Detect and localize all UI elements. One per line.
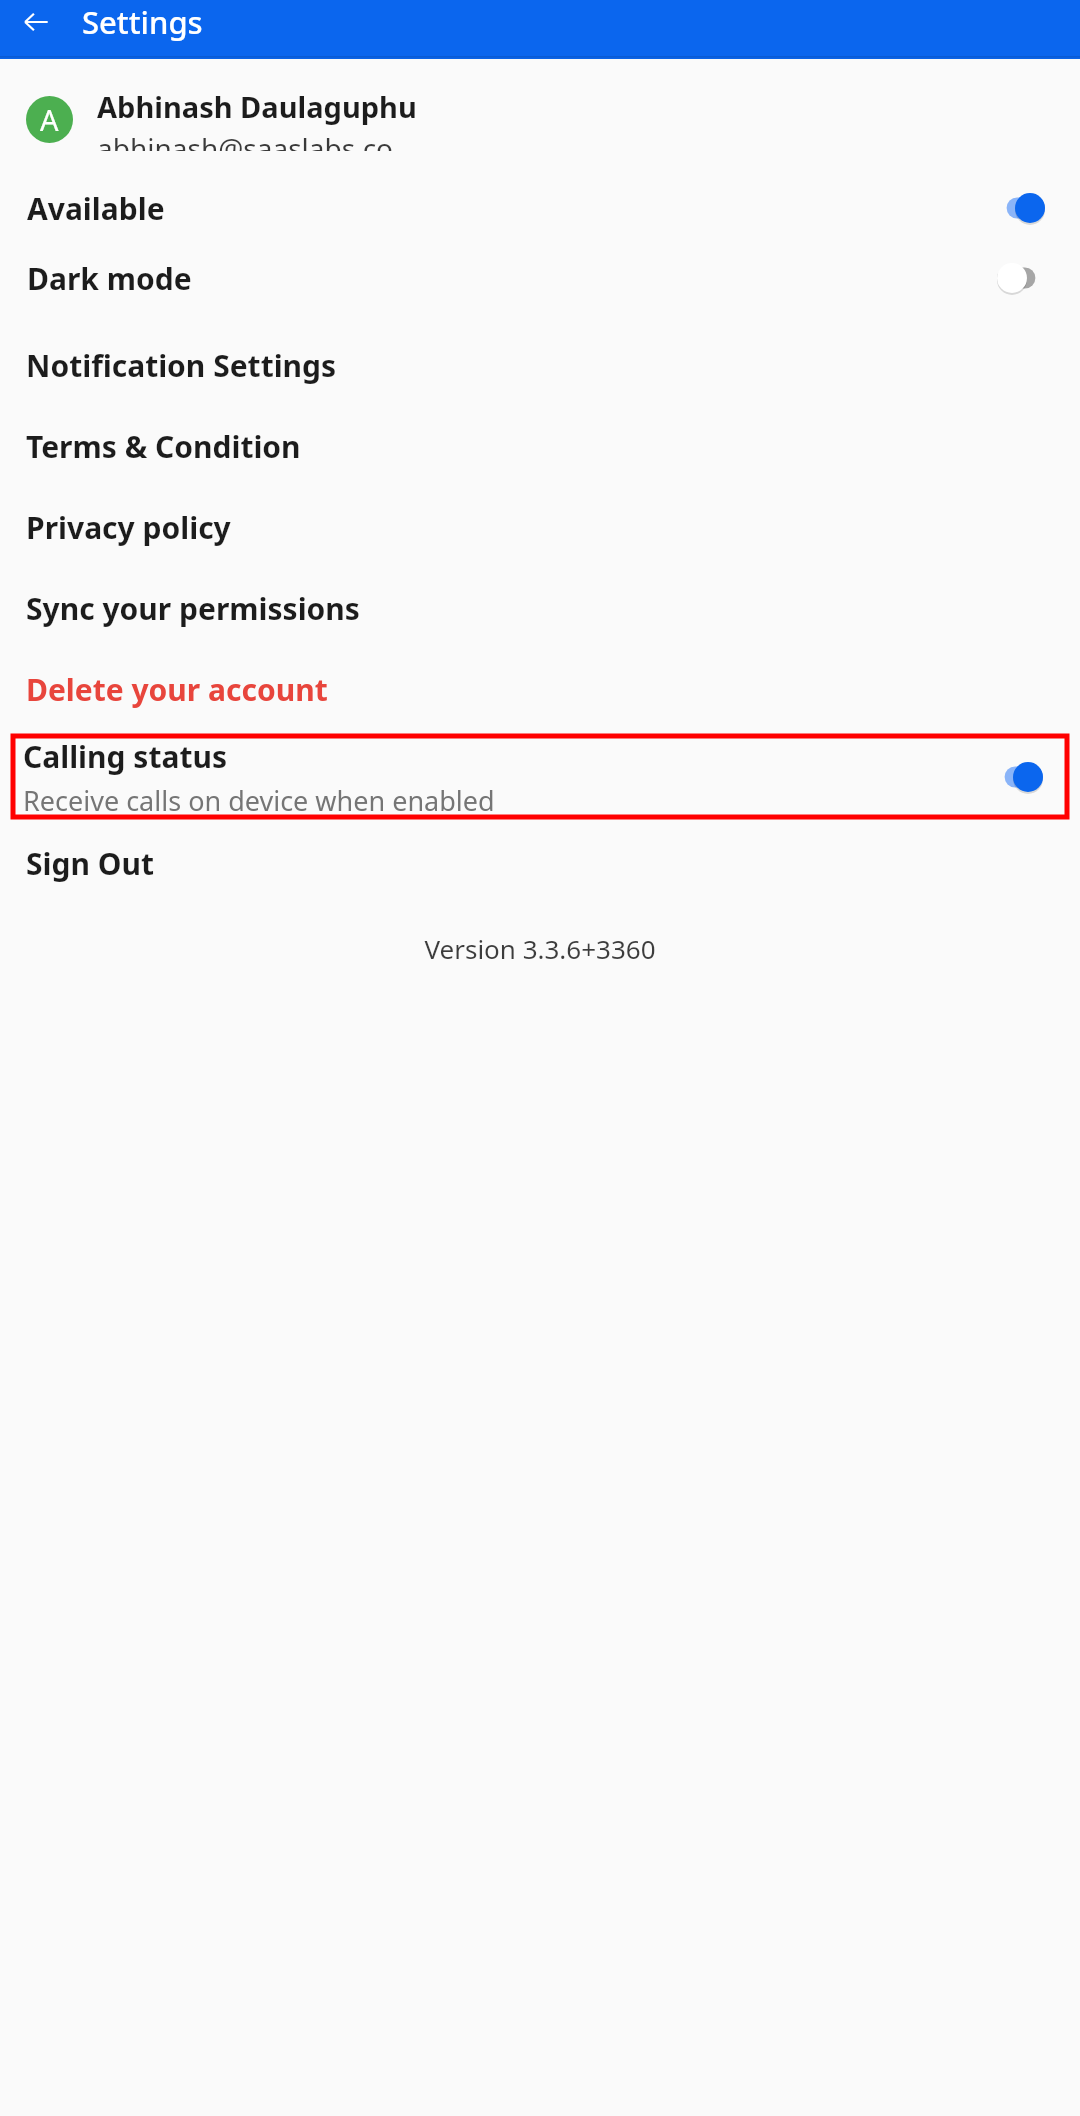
button[interactable]: Privacy policy (0, 487, 1080, 568)
button[interactable]: Delete your account (0, 649, 1080, 730)
button[interactable]: Sign Out (0, 831, 1080, 895)
button[interactable]: Calling status (13, 736, 1067, 817)
button[interactable]: A (0, 87, 1080, 151)
staticText: Version 3.3.6+3360 (0, 931, 1080, 966)
button[interactable]: Sync your permissions (0, 568, 1080, 649)
staticText: Terms & Condition (26, 426, 301, 467)
staticText: Calling status (23, 736, 227, 777)
staticText: abhinash@saaslabs.co (97, 129, 394, 151)
staticText: Delete your account (26, 669, 328, 710)
staticText: A (40, 100, 59, 139)
button[interactable]: Available (0, 173, 1080, 243)
staticText: Receive calls on device when enabled (23, 782, 495, 817)
button[interactable]: On (997, 193, 1045, 223)
staticText: Privacy policy (26, 507, 231, 548)
staticText: Sync your permissions (26, 588, 360, 629)
button[interactable]: On (995, 762, 1043, 792)
staticText: Abhinash Daulaguphu (97, 87, 417, 126)
staticText: Sign Out (26, 843, 155, 884)
button[interactable]: Dark mode (0, 243, 1080, 313)
staticText: Settings (82, 1, 203, 43)
staticText: Notification Settings (26, 345, 337, 386)
button[interactable]: Back (14, 0, 58, 44)
button[interactable]: Notification Settings (0, 325, 1080, 406)
staticText: Dark mode (27, 258, 192, 299)
button[interactable]: Terms & Condition (0, 406, 1080, 487)
staticText: Available (27, 188, 165, 229)
button[interactable]: Off (997, 263, 1045, 293)
